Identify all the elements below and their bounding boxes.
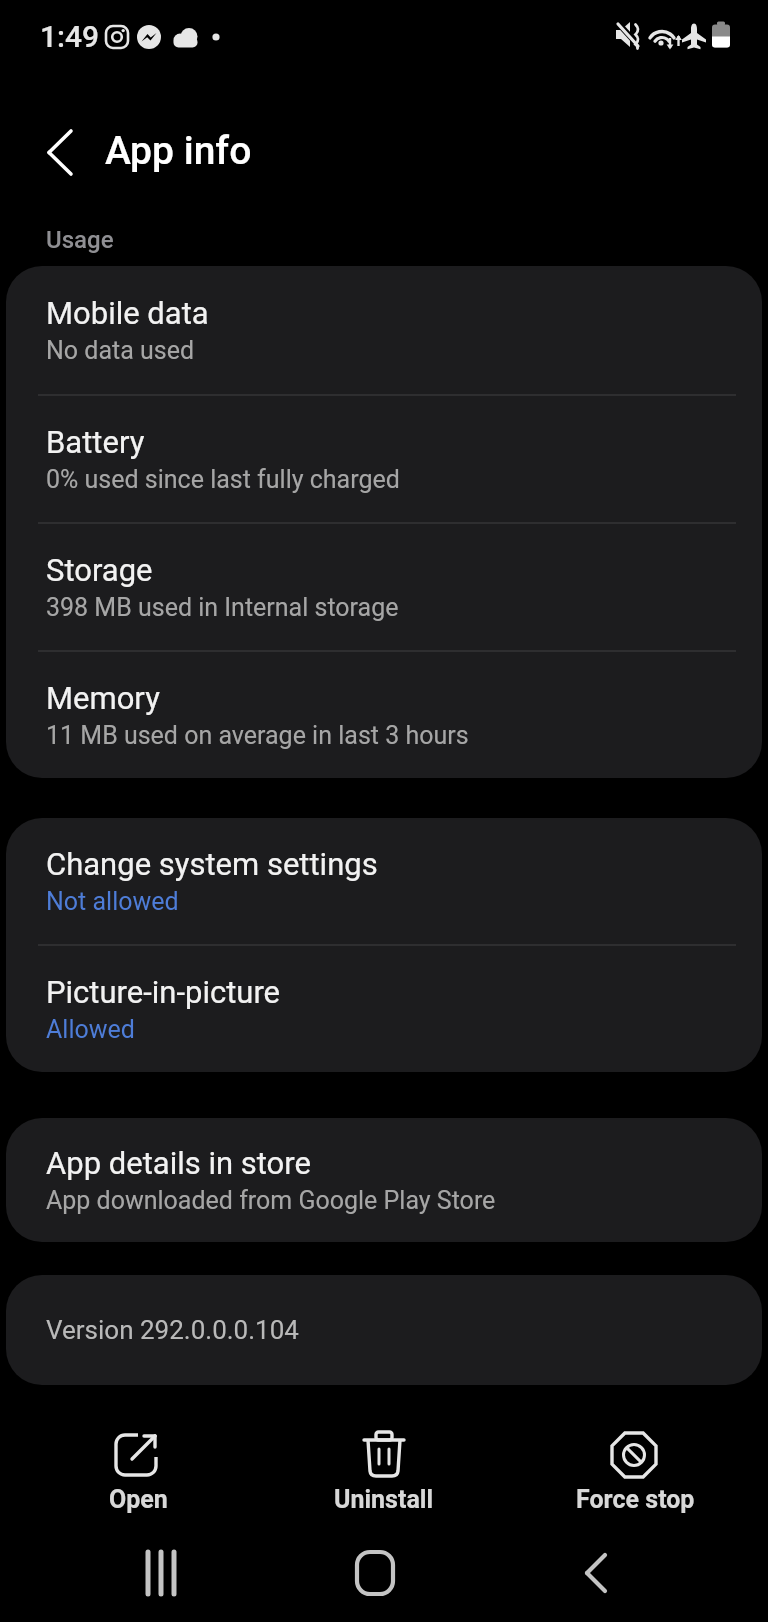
button[interactable]: Memory xyxy=(6,652,762,778)
staticText: 11 MB used on average in last 3 hours xyxy=(46,721,469,750)
staticText: Mobile data xyxy=(46,295,209,331)
staticText: Change system settings xyxy=(46,846,378,882)
staticText: App info xyxy=(105,128,252,174)
staticText: No data used xyxy=(46,336,195,365)
staticText: Open xyxy=(109,1485,168,1514)
button[interactable]: Version 292.0.0.0.104 xyxy=(6,1275,762,1385)
staticText: Version 292.0.0.0.104 xyxy=(46,1315,299,1345)
staticText: 0% used since last fully charged xyxy=(46,465,400,494)
button[interactable]: Change system settings xyxy=(6,818,762,944)
staticText: App downloaded from Google Play Store xyxy=(46,1186,496,1215)
staticText: 398 MB used in Internal storage xyxy=(46,593,399,622)
staticText: Storage xyxy=(46,552,153,588)
button[interactable]: Storage xyxy=(6,524,762,650)
button[interactable] xyxy=(536,1538,656,1610)
button[interactable]: Force stop xyxy=(545,1424,725,1524)
button[interactable] xyxy=(102,1538,222,1610)
staticText: Picture-in-picture xyxy=(46,974,281,1010)
button[interactable] xyxy=(315,1538,435,1610)
button[interactable]: Battery xyxy=(6,396,762,522)
button[interactable] xyxy=(24,120,88,184)
button[interactable]: App details in store xyxy=(6,1118,762,1242)
staticText: 1:49 xyxy=(40,19,100,54)
staticText: Battery xyxy=(46,424,145,460)
staticText: Not allowed xyxy=(46,887,179,916)
button[interactable]: Mobile data xyxy=(6,266,762,394)
staticText: App details in store xyxy=(46,1145,311,1181)
staticText: Memory xyxy=(46,680,160,716)
staticText: Force stop xyxy=(576,1485,695,1514)
button[interactable]: Picture-in-picture xyxy=(6,946,762,1072)
staticText: Allowed xyxy=(46,1015,135,1044)
staticText: Usage xyxy=(46,226,114,254)
button[interactable]: Uninstall xyxy=(294,1424,474,1524)
button[interactable]: Open xyxy=(48,1424,228,1524)
staticText: Uninstall xyxy=(334,1485,434,1514)
